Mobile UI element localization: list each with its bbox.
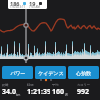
- staticText: 1/3/24 3:11: [10, 5, 26, 9]
- staticText: 1:21:39: [27, 87, 50, 97]
- staticText: 160: [52, 87, 65, 97]
- button[interactable]: カロリー: [75, 83, 100, 97]
- staticText: 992: [77, 87, 90, 97]
- button[interactable]: 時間: [25, 83, 50, 97]
- staticText: カロリー: [77, 83, 90, 87]
- staticText: W: [65, 93, 68, 97]
- staticText: 7:53 AM: [29, 5, 40, 9]
- button[interactable]: パワー: [2, 66, 33, 79]
- staticText: 19: [29, 0, 36, 7]
- staticText: パワー: [10, 70, 26, 76]
- button[interactable]: 平均: [50, 83, 75, 97]
- button[interactable]: 186: [8, 0, 47, 9]
- staticText: 186: [10, 0, 20, 7]
- staticText: 距離: [2, 83, 9, 87]
- button[interactable]: 心拍数: [68, 66, 99, 79]
- staticText: km: [16, 93, 21, 97]
- button[interactable]: 距離: [0, 83, 25, 97]
- staticText: 平均: [52, 83, 59, 87]
- staticText: ケイデンス: [38, 70, 64, 76]
- staticText: 心拍数: [76, 70, 91, 76]
- staticText: 時間: [27, 83, 34, 87]
- button[interactable]: ケイデンス: [35, 66, 66, 79]
- staticText: 34.0: [2, 87, 16, 97]
